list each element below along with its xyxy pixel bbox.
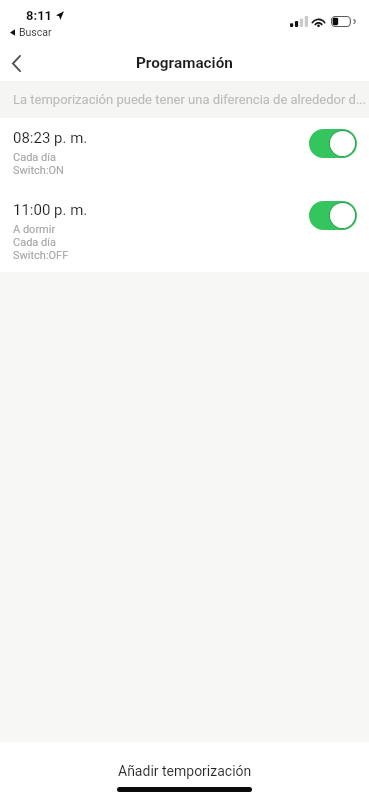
- staticText: Programación: [136, 54, 233, 72]
- staticText: 11:00 p. m.: [13, 201, 88, 219]
- button[interactable]: Buscar: [10, 25, 56, 39]
- button[interactable]: Toggle: [309, 201, 357, 230]
- staticText: Cada día: [13, 151, 56, 164]
- button[interactable]: 08:23 p. m.: [0, 128, 369, 181]
- staticText: Añadir temporización: [118, 763, 252, 779]
- staticText: La temporización puede tener una diferen…: [13, 92, 367, 107]
- staticText: 8:11: [26, 8, 53, 23]
- staticText: 08:23 p. m.: [13, 129, 88, 147]
- button[interactable]: Añadir temporización: [0, 742, 369, 800]
- staticText: A dormir: [13, 223, 56, 236]
- button[interactable]: Toggle: [309, 129, 357, 158]
- staticText: Switch:OFF: [13, 249, 69, 262]
- staticText: Buscar: [19, 26, 52, 38]
- button[interactable]: Back: [0, 44, 40, 81]
- staticText: Cada día: [13, 236, 56, 249]
- staticText: Switch:ON: [13, 164, 64, 177]
- button[interactable]: 11:00 p. m.: [0, 200, 369, 266]
